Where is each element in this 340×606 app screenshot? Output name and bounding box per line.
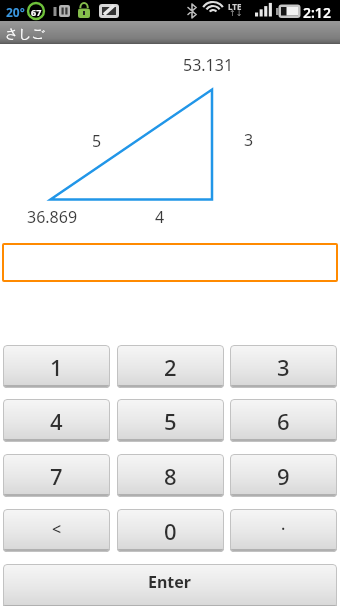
staticText: 0 <box>164 516 177 546</box>
staticText: 20° <box>6 4 25 20</box>
staticText: 2 <box>164 352 177 382</box>
staticText: 1 <box>50 352 63 382</box>
staticText: ↑↓ <box>229 9 243 18</box>
staticText: 9 <box>277 461 290 491</box>
button[interactable]: 0 <box>117 509 224 552</box>
staticText: < <box>52 518 62 540</box>
staticText: 6 <box>277 406 290 436</box>
staticText: Enter <box>148 571 192 593</box>
button[interactable]: 9 <box>230 454 337 497</box>
staticText: さしご <box>5 25 45 41</box>
button[interactable]: 3 <box>230 345 337 388</box>
button[interactable]: 6 <box>230 399 337 442</box>
staticText: 67 <box>31 6 42 18</box>
staticText: 8 <box>164 461 177 491</box>
staticText: 5 <box>164 406 177 436</box>
staticText: LTE <box>228 1 242 12</box>
button[interactable]: Enter <box>3 564 337 606</box>
button[interactable]: 7 <box>3 454 110 497</box>
staticText: 7 <box>50 461 63 491</box>
staticText: 4 <box>50 406 63 436</box>
staticText: 3 <box>277 352 290 382</box>
staticText: 36.869 <box>27 206 78 228</box>
button[interactable]: 2 <box>117 345 224 388</box>
staticText: 3 <box>244 129 254 151</box>
staticText: · <box>281 518 286 540</box>
button[interactable]: 5 <box>117 399 224 442</box>
button[interactable]: · <box>230 509 337 552</box>
staticText: 4 <box>155 206 165 228</box>
button[interactable]: 4 <box>3 399 110 442</box>
button[interactable]: 8 <box>117 454 224 497</box>
staticText: 2:12 <box>303 3 331 22</box>
staticText: 53.131 <box>183 54 234 76</box>
button[interactable] <box>2 243 338 282</box>
button[interactable]: < <box>3 509 110 552</box>
button[interactable]: 1 <box>3 345 110 388</box>
staticText: 5 <box>92 130 102 152</box>
